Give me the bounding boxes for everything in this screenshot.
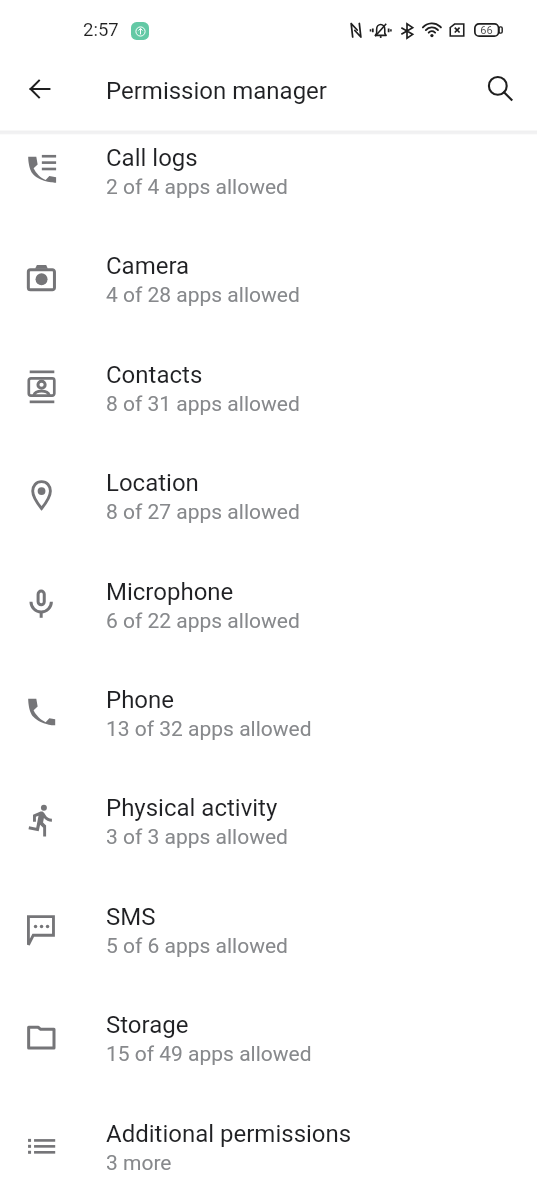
staticText: 4 of 28 apps allowed (106, 283, 300, 308)
staticText: 6 of 22 apps allowed (106, 609, 300, 634)
button[interactable]: Location (0, 458, 537, 566)
staticText: Location (106, 469, 199, 497)
staticText: Contacts (106, 361, 203, 389)
button[interactable]: SMS (0, 892, 537, 1000)
staticText: Permission manager (106, 77, 327, 105)
staticText: Microphone (106, 578, 234, 606)
staticText: Call logs (106, 144, 198, 172)
button[interactable]: Camera (0, 241, 537, 349)
button[interactable]: Contacts (0, 350, 537, 458)
button[interactable]: Back (12, 65, 68, 113)
staticText: 2 of 4 apps allowed (106, 175, 288, 200)
staticText: 15 of 49 apps allowed (106, 1042, 312, 1067)
button[interactable]: Storage (0, 1000, 537, 1108)
button[interactable]: Phone (0, 675, 537, 783)
staticText: 13 of 32 apps allowed (106, 717, 312, 742)
staticText: 8 of 27 apps allowed (106, 500, 300, 525)
staticText: 8 of 31 apps allowed (106, 392, 300, 417)
button[interactable]: Physical activity (0, 783, 537, 891)
button[interactable]: Search (476, 64, 524, 112)
staticText: 66 (480, 24, 493, 37)
button[interactable]: Microphone (0, 567, 537, 675)
staticText: 2:57 (83, 19, 119, 41)
staticText: Camera (106, 252, 190, 280)
staticText: Phone (106, 686, 175, 714)
staticText: 3 of 3 apps allowed (106, 825, 288, 850)
staticText: 5 of 6 apps allowed (106, 934, 288, 959)
staticText: 3 more (106, 1151, 172, 1176)
staticText: Additional permissions (106, 1120, 352, 1148)
staticText: Storage (106, 1011, 189, 1039)
button[interactable]: Additional permissions (0, 1109, 537, 1200)
staticText: Physical activity (106, 794, 278, 822)
button[interactable]: Call logs (0, 133, 537, 241)
staticText: SMS (106, 903, 156, 931)
